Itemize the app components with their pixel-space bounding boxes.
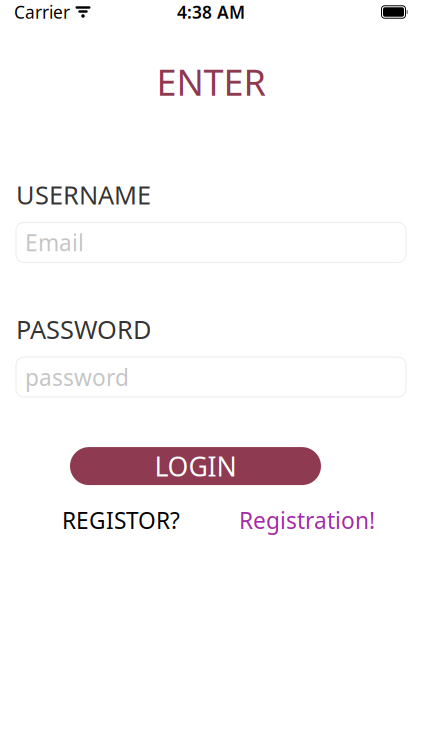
staticText: ENTER	[156, 58, 265, 106]
button[interactable]: Registration!	[239, 505, 375, 535]
staticText: password	[25, 362, 129, 392]
staticText: Carrier	[14, 0, 70, 23]
staticText: 4:38 AM	[177, 0, 245, 23]
button[interactable]: LOGIN	[70, 447, 321, 485]
staticText: Email	[25, 227, 84, 257]
button[interactable]: REGISTOR?	[62, 505, 180, 535]
staticText: REGISTOR?	[62, 505, 180, 535]
staticText: USERNAME	[16, 178, 151, 211]
staticText: LOGIN	[154, 448, 236, 484]
staticText: PASSWORD	[16, 312, 151, 346]
staticText: Registration!	[239, 505, 375, 535]
